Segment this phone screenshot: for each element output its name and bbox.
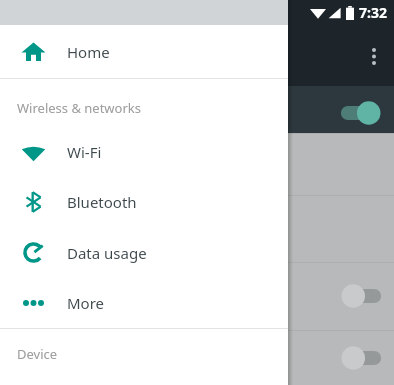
button[interactable]: Wi-Fi [0,127,288,177]
button[interactable]: Switch off [332,275,388,317]
button[interactable]: More options [358,40,390,72]
staticText: 7:32 [359,3,387,22]
button[interactable]: Switch off [332,337,388,379]
staticText: Wi-Fi [67,142,102,162]
staticText: Data usage [67,243,147,263]
button[interactable]: Master switch on [334,92,390,134]
staticText: Wireless & networks [17,99,141,117]
button[interactable]: Bluetooth [0,177,288,227]
staticText: More [67,293,105,313]
staticText: Device [17,345,58,363]
button[interactable]: More [0,278,288,328]
button[interactable]: Home [0,25,288,78]
staticText: Bluetooth [67,192,137,212]
staticText: Home [67,42,110,62]
button[interactable]: Data usage [0,227,288,278]
